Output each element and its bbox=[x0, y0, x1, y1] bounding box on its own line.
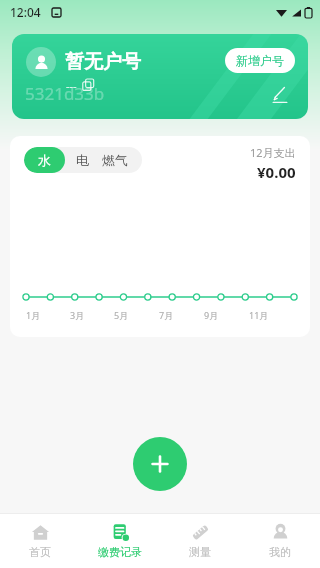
staticText: 5月 bbox=[114, 309, 129, 321]
staticText: 缴费记录 bbox=[98, 545, 142, 559]
button[interactable]: 新增 bbox=[133, 437, 187, 491]
staticText: 燃气 bbox=[102, 152, 128, 168]
staticText: 暂无户号 bbox=[65, 50, 141, 74]
button[interactable]: 测量 bbox=[160, 514, 240, 568]
button[interactable]: 燃气 bbox=[100, 147, 142, 173]
staticText: 5321d33b bbox=[25, 82, 105, 105]
button[interactable]: 缴费记录 bbox=[80, 514, 160, 568]
staticText: --- bbox=[66, 78, 77, 93]
staticText: 1月 bbox=[26, 309, 41, 321]
staticText: 7月 bbox=[159, 309, 174, 321]
staticText: 3月 bbox=[70, 309, 85, 321]
staticText: 11月 bbox=[249, 309, 269, 321]
staticText: 12月支出 bbox=[250, 145, 296, 160]
staticText: 水 bbox=[38, 152, 51, 168]
button[interactable]: 复制 bbox=[82, 79, 95, 92]
button[interactable]: 首页 bbox=[0, 514, 80, 568]
staticText: 电 bbox=[76, 152, 89, 168]
button[interactable]: 电 bbox=[65, 147, 100, 173]
staticText: 12:04 bbox=[10, 4, 41, 20]
button[interactable]: 编辑 bbox=[270, 84, 290, 104]
staticText: 首页 bbox=[29, 545, 51, 559]
button[interactable]: 水 bbox=[24, 147, 65, 173]
button[interactable]: 我的 bbox=[240, 514, 320, 568]
staticText: 我的 bbox=[269, 545, 291, 559]
button[interactable]: 新增户号 bbox=[225, 48, 295, 73]
staticText: 测量 bbox=[189, 545, 211, 559]
staticText: 9月 bbox=[204, 309, 219, 321]
button[interactable]: 暂无户号 bbox=[12, 34, 308, 119]
staticText: ¥0.00 bbox=[257, 162, 296, 182]
staticText: 新增户号 bbox=[236, 53, 284, 68]
